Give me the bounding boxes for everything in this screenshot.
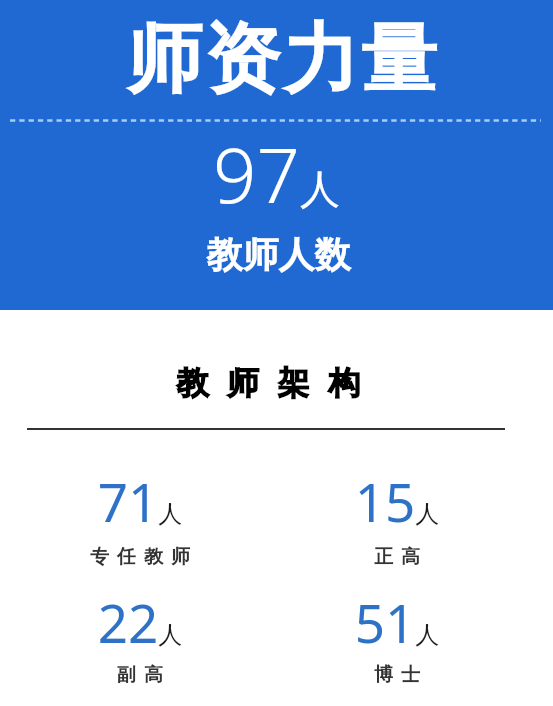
staticText: 15人 [277, 465, 517, 537]
staticText: 51人 [277, 586, 517, 658]
button[interactable]: 15人 [277, 465, 517, 561]
staticText: 教师架构 [1, 363, 553, 403]
button[interactable]: 51人 [277, 586, 517, 682]
staticText: 教师人数 [2, 232, 553, 277]
staticText: 副高 [24, 663, 264, 687]
staticText: 71人 [20, 465, 260, 537]
staticText: 22人 [20, 586, 260, 658]
staticText: 专任教师 [24, 545, 264, 569]
button[interactable]: 22人 [20, 586, 260, 682]
staticText: 博士 [281, 663, 521, 687]
staticText: 97人 [0, 122, 553, 226]
staticText: 师资力量 [6, 12, 553, 108]
staticText: 正高 [281, 545, 521, 569]
button[interactable]: 71人 [20, 465, 260, 561]
